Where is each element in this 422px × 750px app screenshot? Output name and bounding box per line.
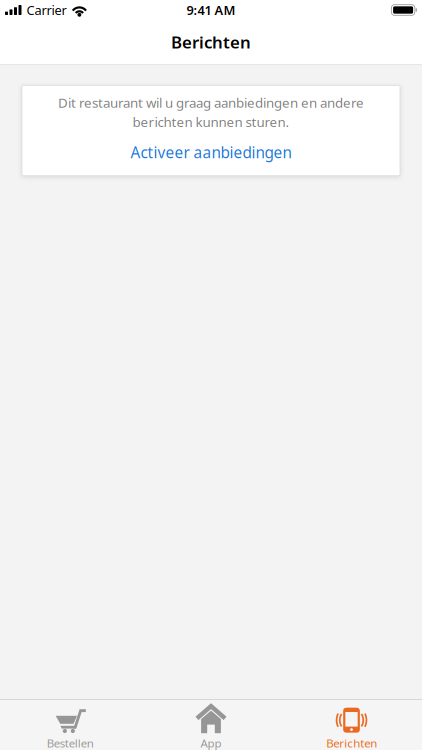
staticText: Berichten — [171, 31, 251, 53]
button[interactable]: Activeer aanbiedingen — [22, 131, 400, 176]
button[interactable]: Berichten — [281, 700, 422, 750]
staticText: Bestellen — [47, 735, 94, 750]
staticText: berichten kunnen sturen. — [132, 113, 289, 131]
staticText: Dit restaurant wil u graag aanbiedingen … — [58, 93, 364, 112]
staticText: 9:41 AM — [186, 1, 235, 19]
button[interactable]: App — [141, 700, 281, 750]
staticText: Activeer aanbiedingen — [130, 142, 291, 163]
staticText: App — [200, 735, 221, 750]
button[interactable]: Bestellen — [0, 700, 141, 750]
staticText: Carrier — [26, 1, 66, 19]
staticText: Berichten — [326, 735, 377, 750]
